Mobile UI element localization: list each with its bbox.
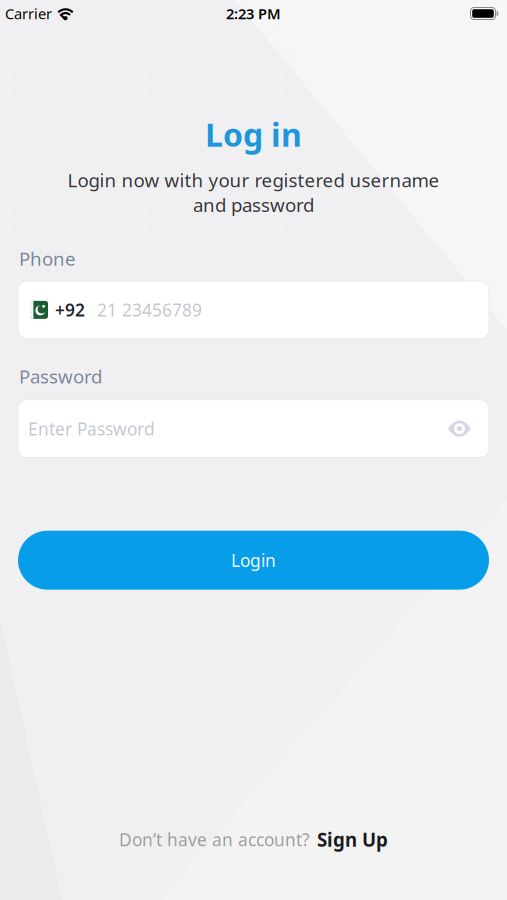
staticText: Phone (19, 246, 76, 271)
staticText: Log in (205, 113, 302, 155)
staticText: 2:23 PM (226, 4, 281, 23)
staticText: Sign Up (317, 827, 388, 852)
button[interactable]: Show password (448, 419, 489, 439)
staticText: Carrier (5, 4, 52, 23)
staticText: 21 23456789 (97, 298, 202, 321)
staticText: Login now with your registered username (67, 167, 439, 192)
staticText: Enter Password (28, 417, 155, 440)
button[interactable]: Country code (30, 298, 85, 321)
staticText: and password (193, 192, 314, 217)
staticText: Login (231, 549, 276, 572)
button[interactable]: Login (0, 531, 507, 590)
staticText: Don’t have an account? (119, 828, 310, 851)
staticText: +92 (55, 298, 85, 321)
staticText: Password (19, 364, 102, 389)
button[interactable]: Sign Up (317, 827, 388, 852)
